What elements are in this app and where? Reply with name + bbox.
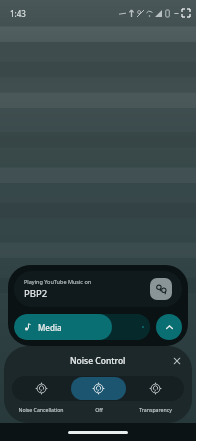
- button[interactable]: Media: [14, 314, 150, 340]
- staticText: Transparency: [139, 406, 172, 413]
- staticText: 1:43: [10, 8, 26, 19]
- staticText: Playing YouTube Music on: [24, 278, 92, 285]
- button[interactable]: Earbuds output: [150, 278, 172, 300]
- button[interactable]: Close: [170, 354, 184, 368]
- staticText: Off: [95, 406, 103, 413]
- staticText: Noise Control: [70, 355, 126, 367]
- button[interactable]: Noise Cancellation: [13, 377, 69, 400]
- button[interactable]: Playing YouTube Music on: [14, 271, 182, 307]
- staticText: Noise Cancellation: [18, 406, 64, 413]
- button[interactable]: Transparency: [128, 377, 183, 400]
- staticText: Media: [38, 322, 62, 333]
- button[interactable]: Expand volume controls: [156, 314, 182, 340]
- button[interactable]: Off: [71, 377, 126, 400]
- staticText: PBP2: [24, 287, 48, 300]
